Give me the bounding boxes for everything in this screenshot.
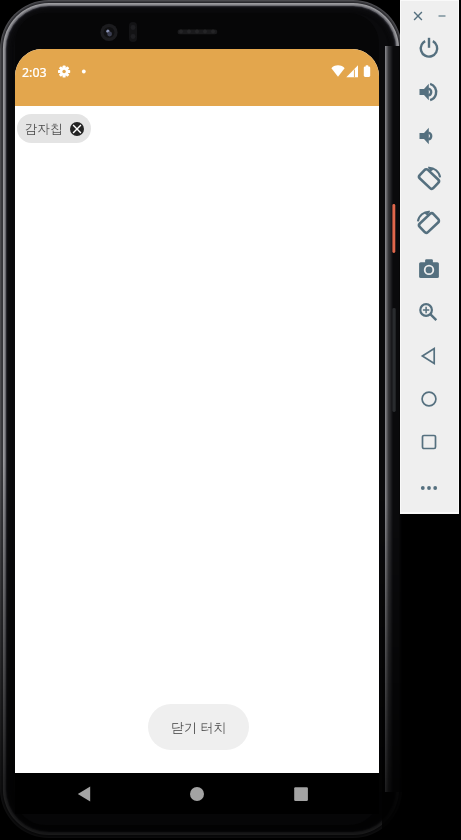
- button[interactable]: Power: [415, 34, 443, 62]
- button[interactable]: Back: [415, 342, 443, 370]
- button[interactable]: Rotate device right: [415, 165, 443, 193]
- button[interactable]: Overview: [415, 428, 443, 456]
- button[interactable]: Take screenshot: [415, 254, 443, 282]
- button[interactable]: 감자칩: [17, 114, 91, 143]
- button[interactable]: Volume down: [415, 122, 443, 150]
- button[interactable]: Volume up: [415, 78, 443, 106]
- button[interactable]: Minimize: [432, 6, 452, 26]
- button[interactable]: 닫기 터치: [148, 704, 249, 750]
- button[interactable]: Zoom: [415, 297, 443, 325]
- button[interactable]: Close: [408, 6, 428, 26]
- button[interactable]: Home: [415, 385, 443, 413]
- button[interactable]: Rotate device left: [415, 209, 443, 237]
- button[interactable]: More: [415, 474, 443, 502]
- button[interactable]: Home: [181, 778, 213, 810]
- staticText: 2:03: [22, 64, 47, 81]
- button[interactable]: Back: [74, 778, 106, 810]
- staticText: 감자칩: [25, 121, 63, 137]
- button[interactable]: Recent apps: [285, 778, 317, 810]
- staticText: 닫기 터치: [171, 718, 227, 736]
